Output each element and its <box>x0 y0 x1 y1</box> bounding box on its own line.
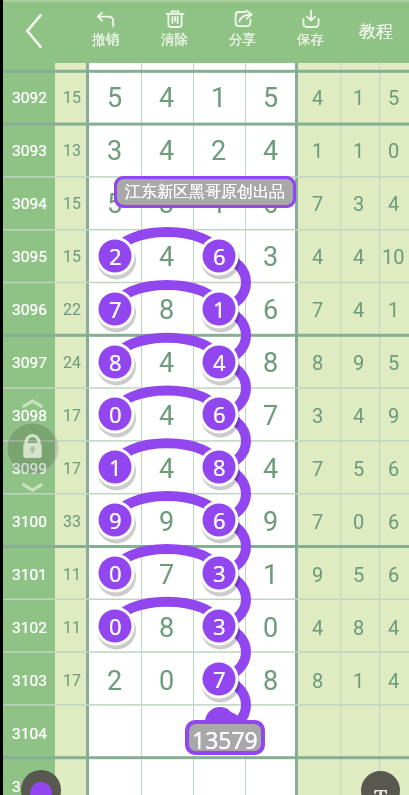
button[interactable]: 0 <box>141 654 193 707</box>
button[interactable]: 1 <box>245 548 297 601</box>
button[interactable] <box>245 707 297 760</box>
button[interactable]: 8 <box>141 601 193 654</box>
button[interactable] <box>193 442 245 495</box>
button[interactable] <box>245 760 297 795</box>
button[interactable]: 3097 <box>0 336 55 389</box>
button[interactable] <box>193 601 245 654</box>
button[interactable]: 2 <box>89 654 141 707</box>
button[interactable]: 5 <box>89 71 141 124</box>
button[interactable]: 7 <box>197 657 241 701</box>
button[interactable]: 清除 <box>147 0 201 63</box>
button[interactable]: 3100 <box>0 495 55 548</box>
button[interactable] <box>193 389 245 442</box>
button[interactable]: 撤销 <box>78 0 132 63</box>
button[interactable]: 1 <box>193 71 245 124</box>
button[interactable]: 3 <box>197 604 241 648</box>
button[interactable]: 6 <box>245 177 297 230</box>
button[interactable] <box>193 495 245 548</box>
button[interactable] <box>89 495 141 548</box>
button[interactable]: 3 <box>141 177 193 230</box>
button[interactable]: 0 <box>93 551 137 595</box>
button[interactable]: Color <box>21 770 61 795</box>
button[interactable]: 4 <box>141 336 193 389</box>
button[interactable]: Scroll up <box>22 399 43 408</box>
button[interactable]: 5 <box>89 177 141 230</box>
button[interactable]: 3096 <box>0 283 55 336</box>
button[interactable] <box>193 707 245 760</box>
button[interactable]: Scroll down <box>22 483 43 492</box>
button[interactable]: 2 <box>193 124 245 177</box>
button[interactable]: 4 <box>141 389 193 442</box>
button[interactable]: 1 <box>197 287 241 331</box>
button[interactable]: 7 <box>93 287 137 331</box>
button[interactable]: 5 <box>245 71 297 124</box>
button[interactable]: 1 <box>93 445 137 489</box>
button[interactable]: 9 <box>141 495 193 548</box>
button[interactable]: 3 <box>89 124 141 177</box>
button[interactable]: 8 <box>245 654 297 707</box>
button[interactable] <box>89 230 141 283</box>
button[interactable]: 3095 <box>0 230 55 283</box>
button[interactable]: 分享 <box>215 0 269 63</box>
button[interactable]: 7 <box>141 548 193 601</box>
button[interactable]: Back <box>10 5 58 57</box>
button[interactable] <box>89 601 141 654</box>
button[interactable]: 3105 <box>0 760 55 795</box>
button[interactable]: 7 <box>245 389 297 442</box>
button[interactable]: 6 <box>197 498 241 542</box>
button[interactable] <box>193 283 245 336</box>
button[interactable] <box>141 707 193 760</box>
button[interactable]: 6 <box>245 283 297 336</box>
button[interactable]: 保存 <box>283 0 337 63</box>
button[interactable]: 4 <box>141 442 193 495</box>
button[interactable] <box>89 548 141 601</box>
button[interactable]: 3103 <box>0 654 55 707</box>
button[interactable] <box>89 283 141 336</box>
button[interactable]: 1 <box>193 177 245 230</box>
staticText: 4 <box>213 347 226 377</box>
button[interactable]: 3101 <box>0 548 55 601</box>
button[interactable] <box>193 760 245 795</box>
button[interactable]: 4 <box>141 124 193 177</box>
button[interactable]: 8 <box>141 283 193 336</box>
button[interactable]: 4 <box>245 442 297 495</box>
button[interactable] <box>193 230 245 283</box>
button[interactable]: 8 <box>245 336 297 389</box>
button[interactable]: 6 <box>197 392 241 436</box>
button[interactable]: 3099 <box>0 442 55 495</box>
button[interactable] <box>193 548 245 601</box>
button[interactable] <box>89 336 141 389</box>
button[interactable] <box>89 389 141 442</box>
button[interactable]: 3 <box>197 551 241 595</box>
button[interactable]: 3092 <box>0 71 55 124</box>
button[interactable]: 3098 <box>0 389 55 442</box>
button[interactable] <box>193 336 245 389</box>
button[interactable] <box>141 760 193 795</box>
button[interactable] <box>89 707 141 760</box>
button[interactable]: 3 <box>245 230 297 283</box>
button[interactable]: 8 <box>93 340 137 384</box>
button[interactable]: 3104 <box>0 707 55 760</box>
button[interactable]: 9 <box>245 495 297 548</box>
button[interactable]: 2 <box>93 234 137 278</box>
button[interactable]: 3094 <box>0 177 55 230</box>
button[interactable]: 3093 <box>0 124 55 177</box>
button[interactable]: 4 <box>141 71 193 124</box>
button[interactable] <box>89 442 141 495</box>
button[interactable]: 4 <box>197 340 241 384</box>
button[interactable]: 0 <box>93 604 137 648</box>
button[interactable]: 0 <box>93 392 137 436</box>
button[interactable]: 8 <box>197 445 241 489</box>
button[interactable]: 教程 <box>348 0 404 63</box>
button[interactable]: 3102 <box>0 601 55 654</box>
button[interactable]: 13579 <box>189 724 261 751</box>
button[interactable]: 9 <box>93 498 137 542</box>
button[interactable]: 4 <box>141 230 193 283</box>
button[interactable]: Lock <box>6 422 59 475</box>
button[interactable]: 0 <box>245 601 297 654</box>
button[interactable]: 6 <box>197 234 241 278</box>
button[interactable]: 4 <box>245 124 297 177</box>
button[interactable]: Text <box>361 771 400 795</box>
button[interactable] <box>193 654 245 707</box>
